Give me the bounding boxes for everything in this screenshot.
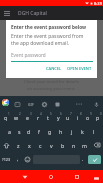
button[interactable]: ?123 (0, 154, 12, 164)
staticText: ?123 (2, 157, 11, 162)
staticText: y (57, 114, 60, 121)
button[interactable]: Emoji (22, 154, 32, 164)
staticText: b (61, 142, 65, 149)
button[interactable]: t (43, 110, 53, 124)
staticText: q (4, 114, 8, 121)
button[interactable]: x (24, 138, 35, 152)
staticText: j (71, 128, 73, 135)
staticText: 2 (19, 112, 21, 116)
button[interactable]: . (79, 154, 87, 164)
staticText: CANCEL (46, 66, 62, 71)
button[interactable]: Stickers (12, 99, 22, 109)
button[interactable]: Backspace (90, 138, 103, 152)
staticText: DGH Capital (18, 10, 47, 17)
button[interactable]: , (13, 154, 22, 164)
staticText: 9 (90, 112, 92, 116)
staticText: Enter the event password from the app do… (11, 33, 84, 46)
staticText: n (72, 142, 76, 149)
staticText: z (17, 142, 20, 149)
staticText: s (18, 128, 21, 135)
staticText: k (81, 128, 84, 135)
staticText: c (39, 142, 42, 149)
staticText: x (28, 142, 31, 149)
button[interactable]: Navigation menu (1, 8, 12, 19)
button[interactable]: Recent apps (72, 172, 82, 182)
button[interactable]: y (53, 110, 63, 124)
staticText: , (17, 156, 19, 163)
button[interactable]: More options (74, 99, 84, 109)
staticText: a (8, 128, 11, 135)
button[interactable]: GIF (26, 99, 36, 109)
button[interactable]: Voice input (91, 99, 101, 109)
staticText: 1 (8, 112, 10, 116)
staticText: l (93, 128, 95, 135)
button[interactable]: d (24, 124, 34, 138)
staticText: 3 (30, 112, 32, 116)
staticText: r (37, 114, 40, 121)
button[interactable]: l (88, 124, 99, 138)
staticText: GIF (28, 102, 34, 107)
staticText: 8 (80, 112, 82, 116)
button[interactable]: Enter (88, 155, 101, 164)
staticText: 8:39 (94, 1, 102, 6)
button[interactable]: Settings (39, 99, 49, 109)
staticText: p (96, 114, 100, 121)
button[interactable]: s (14, 124, 24, 138)
button[interactable]: OPEN EVENT (66, 66, 93, 71)
button[interactable]: Google search (2, 99, 9, 106)
button[interactable]: CANCEL (45, 66, 63, 71)
staticText: g (48, 128, 52, 135)
button[interactable]: h (55, 124, 66, 138)
staticText: f (38, 128, 40, 135)
staticText: 0 (100, 112, 102, 116)
button[interactable]: i (73, 110, 83, 124)
button[interactable]: Clipboard (52, 99, 62, 109)
button[interactable]: Shift (0, 138, 13, 152)
button[interactable]: k (77, 124, 88, 138)
button[interactable]: v (46, 138, 57, 152)
staticText: v (50, 142, 53, 149)
staticText: h (59, 128, 63, 135)
staticText: i (77, 114, 79, 121)
button[interactable]: c (35, 138, 46, 152)
button[interactable]: u (63, 110, 73, 124)
staticText: 4 (40, 112, 42, 116)
staticText: 6 (60, 112, 62, 116)
button[interactable]: Switch keyboard (91, 173, 101, 183)
staticText: m (82, 142, 87, 149)
button[interactable]: z (13, 138, 24, 152)
staticText: Check your email for details (24, 79, 79, 85)
staticText: u (66, 114, 70, 121)
button[interactable]: m (79, 138, 90, 152)
button[interactable]: j (66, 124, 77, 138)
staticText: 5 (50, 112, 52, 116)
staticText: e (26, 114, 29, 121)
staticText: w (14, 114, 19, 121)
button[interactable]: a (4, 124, 14, 138)
button[interactable]: n (68, 138, 79, 152)
button[interactable]: p (93, 110, 103, 124)
button[interactable]: Home (46, 172, 56, 182)
staticText: Enter the event password below (11, 24, 87, 30)
staticText: t (47, 114, 49, 121)
button[interactable]: r (33, 110, 43, 124)
staticText: . (82, 156, 84, 163)
staticText: d (27, 128, 31, 135)
button[interactable]: b (57, 138, 68, 152)
button[interactable]: e (22, 110, 33, 124)
button[interactable]: g (44, 124, 55, 138)
button[interactable]: w (11, 110, 22, 124)
button[interactable]: Back (20, 172, 30, 182)
staticText: Event password (11, 52, 46, 58)
staticText: 7 (70, 112, 72, 116)
button[interactable]: f (34, 124, 44, 138)
staticText: o (86, 114, 90, 121)
staticText: OPEN EVENT (67, 66, 92, 71)
staticText: on accessing your event. (27, 86, 76, 92)
button[interactable]: o (83, 110, 93, 124)
button[interactable]: q (0, 110, 11, 124)
